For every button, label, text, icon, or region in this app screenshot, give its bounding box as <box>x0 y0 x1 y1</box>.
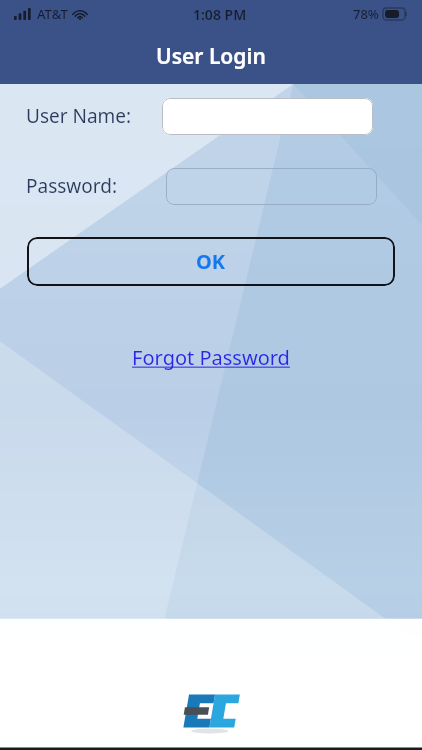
staticText: Forgot Password <box>132 344 290 371</box>
staticText: OK <box>196 248 226 275</box>
button[interactable]: OK <box>27 237 395 286</box>
button[interactable] <box>166 168 377 205</box>
staticText: User Name: <box>26 103 132 129</box>
staticText: 1:08 PM <box>193 5 247 24</box>
staticText: Password: <box>26 173 118 199</box>
staticText: AT&T <box>37 5 68 23</box>
staticText: 78% <box>353 5 379 23</box>
button[interactable] <box>162 98 373 135</box>
other: App logo <box>180 688 242 734</box>
button[interactable]: Forgot Password <box>124 340 298 375</box>
staticText: User Login <box>156 42 266 71</box>
